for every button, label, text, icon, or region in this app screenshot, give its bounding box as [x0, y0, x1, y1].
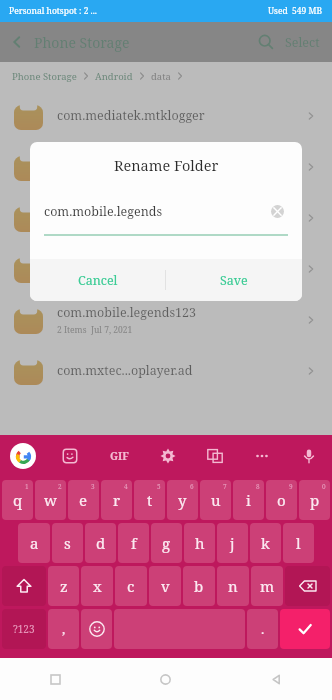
- button[interactable]: p: [299, 480, 330, 520]
- staticText: data: [151, 70, 171, 83]
- staticText: ,: [62, 620, 66, 638]
- staticText: n: [228, 576, 238, 596]
- button[interactable]: data: [151, 70, 171, 83]
- staticText: Phone Storage: [34, 33, 130, 52]
- button[interactable]: Back: [221, 658, 332, 700]
- staticText: d: [96, 533, 106, 553]
- button[interactable]: Voice input: [296, 443, 322, 469]
- button[interactable]: q: [2, 480, 33, 520]
- button[interactable]: Select: [285, 22, 320, 62]
- staticText: 9: [289, 482, 293, 491]
- button[interactable]: com.mxtec...oplayer.ad: [0, 345, 332, 396]
- button[interactable]: e: [68, 480, 99, 520]
- staticText: 3: [91, 482, 95, 491]
- button[interactable]: a: [18, 523, 50, 563]
- button[interactable]: l: [283, 523, 314, 563]
- button[interactable]: More options: [249, 443, 275, 469]
- staticText: g: [162, 533, 171, 553]
- button[interactable]: o: [266, 480, 297, 520]
- button[interactable]: j: [217, 523, 248, 563]
- button[interactable]: Shift: [2, 566, 46, 606]
- staticText: Rename Folder: [114, 155, 219, 175]
- staticText: e: [79, 490, 88, 510]
- button[interactable]: v: [149, 566, 181, 606]
- button[interactable]: t: [134, 480, 165, 520]
- button[interactable]: Search: [247, 22, 285, 62]
- button[interactable]: c: [115, 566, 147, 606]
- staticText: Phone Storage: [12, 70, 77, 83]
- button[interactable]: Enter: [280, 609, 330, 649]
- button[interactable]: Recent apps: [0, 658, 110, 700]
- button[interactable]: Backspace: [285, 566, 330, 606]
- button[interactable]: Stickers: [57, 443, 83, 469]
- staticText: 4: [124, 482, 128, 491]
- staticText: Select: [285, 34, 320, 51]
- staticText: com.mobile.legends: [44, 203, 163, 220]
- button[interactable]: i: [233, 480, 264, 520]
- staticText: 1 Items Jul 6, 2021: [57, 273, 133, 285]
- staticText: 2: [58, 482, 62, 491]
- button[interactable]: m: [251, 566, 283, 606]
- button[interactable]: d: [85, 523, 116, 563]
- button[interactable]: ,: [48, 609, 79, 649]
- button[interactable]: b: [183, 566, 215, 606]
- staticText: i: [246, 490, 251, 510]
- staticText: a: [30, 533, 39, 553]
- staticText: h: [195, 533, 205, 553]
- button[interactable]: y: [167, 480, 198, 520]
- button[interactable]: Phone Storage: [12, 70, 77, 83]
- staticText: b: [194, 576, 204, 596]
- button[interactable]: [0, 141, 332, 192]
- staticText: com.miHo...hinImpact: [57, 253, 190, 270]
- staticText: s: [64, 533, 71, 553]
- button[interactable]: n: [217, 566, 249, 606]
- button[interactable]: z: [48, 566, 79, 606]
- staticText: j: [230, 533, 235, 553]
- button[interactable]: Emoji: [81, 609, 112, 649]
- staticText: o: [277, 490, 286, 510]
- button[interactable]: h: [184, 523, 215, 563]
- button[interactable]: com.miHo...hinImpact: [0, 243, 332, 294]
- staticText: c: [127, 576, 135, 596]
- button[interactable]: Cancel: [30, 259, 165, 301]
- staticText: w: [44, 490, 57, 510]
- staticText: u: [211, 490, 221, 510]
- button[interactable]: Translate: [202, 443, 228, 469]
- button[interactable]: Settings: [155, 443, 181, 469]
- staticText: x: [93, 576, 102, 596]
- staticText: 2 Items Jul 7, 2021: [57, 324, 133, 336]
- button[interactable]: com.mediatek.mtklogger: [0, 90, 332, 141]
- staticText: 7: [223, 482, 227, 491]
- button[interactable]: Save: [166, 259, 302, 301]
- staticText: com.mxtec...oplayer.ad: [57, 362, 193, 379]
- staticText: GIF: [110, 449, 129, 463]
- button[interactable]: com.mobile.legends123: [0, 294, 332, 345]
- button[interactable]: Home: [110, 658, 221, 700]
- button[interactable]: [0, 192, 332, 243]
- staticText: 8: [256, 482, 260, 491]
- staticText: 6: [190, 482, 194, 491]
- button[interactable]: x: [81, 566, 113, 606]
- button[interactable]: Clear text: [266, 200, 288, 222]
- button[interactable]: w: [35, 480, 66, 520]
- button[interactable]: GIF: [104, 443, 134, 469]
- staticText: v: [161, 576, 170, 596]
- staticText: y: [178, 490, 187, 510]
- staticText: ?123: [13, 622, 35, 636]
- button[interactable]: Back: [0, 22, 34, 62]
- button[interactable]: g: [151, 523, 182, 563]
- button[interactable]: f: [118, 523, 149, 563]
- button[interactable]: k: [250, 523, 281, 563]
- button[interactable]: ?123: [2, 609, 46, 649]
- button[interactable]: s: [52, 523, 83, 563]
- staticText: Save: [220, 272, 248, 289]
- button[interactable]: .: [247, 609, 278, 649]
- button[interactable]: Android: [95, 70, 133, 83]
- button[interactable]: r: [101, 480, 132, 520]
- button[interactable]: u: [200, 480, 231, 520]
- staticText: p: [310, 490, 320, 510]
- staticText: .: [261, 620, 265, 638]
- button[interactable]: Google search: [10, 443, 36, 469]
- staticText: f: [131, 533, 137, 553]
